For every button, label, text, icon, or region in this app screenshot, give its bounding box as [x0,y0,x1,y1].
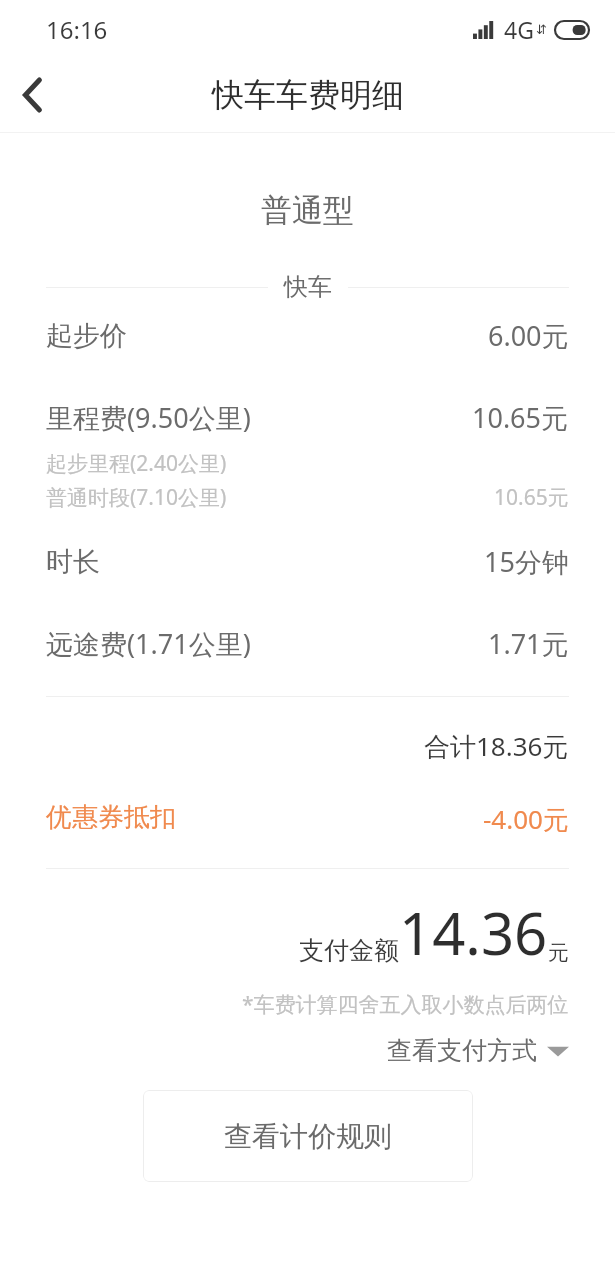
button[interactable]: 里程费(9.50公里) [0,397,615,438]
staticText: 远途费(1.71公里) [46,625,251,662]
staticText: 优惠券抵扣 [46,801,176,834]
staticText: 6.00元 [488,317,569,354]
button[interactable]: 优惠券抵扣 [0,799,615,839]
staticText: 快车车费明细 [212,75,404,115]
button[interactable]: 查看支付方式 [387,1031,569,1070]
button[interactable]: 查看计价规则 [143,1090,473,1182]
staticText: 16:16 [46,13,108,46]
staticText: -4.00元 [483,801,569,837]
staticText: ⇵ [536,22,547,37]
staticText: 14.36 [399,893,548,972]
staticText: 查看支付方式 [387,1035,537,1066]
button[interactable]: 返回 [0,62,66,128]
staticText: 里程费(9.50公里) [46,399,251,436]
staticText: 起步价 [46,319,127,353]
button[interactable]: 时长 [0,541,615,582]
staticText: 合计18.36元 [424,728,569,764]
staticText: 10.65元 [494,483,569,512]
staticText: 4G [504,14,534,45]
staticText: *车费计算四舍五入取小数点后两位 [242,990,569,1019]
staticText: 支付金额 [299,935,399,966]
staticText: 元 [548,940,569,966]
staticText: 普通时段(7.10公里) [46,483,227,512]
staticText: 普通型 [0,191,615,230]
staticText: 时长 [46,545,100,579]
staticText: 1.71元 [488,625,569,662]
staticText: 查看计价规则 [224,1119,392,1154]
staticText: 10.65元 [472,399,569,436]
staticText: 快车 [284,272,332,302]
button[interactable]: 起步价 [0,315,615,356]
button[interactable]: 远途费(1.71公里) [0,623,615,664]
staticText: 15分钟 [484,543,569,580]
staticText: 起步里程(2.40公里) [46,449,227,478]
